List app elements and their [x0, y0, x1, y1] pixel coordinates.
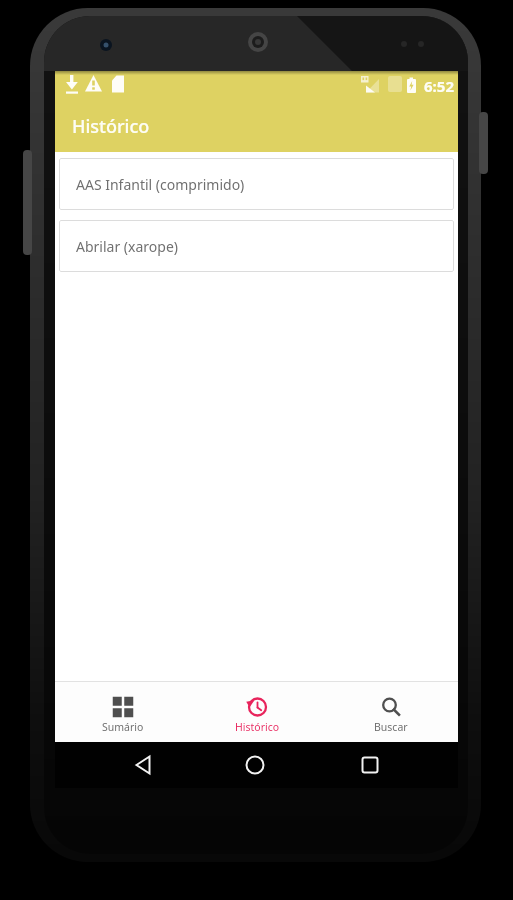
staticText: 6:52 — [424, 76, 454, 96]
button[interactable]: AAS Infantil (comprimido) — [59, 158, 454, 210]
button[interactable] — [324, 742, 458, 788]
staticText: Sumário — [102, 720, 144, 734]
button[interactable] — [55, 742, 190, 788]
staticText: Histórico — [235, 720, 280, 734]
button[interactable]: Abrilar (xarope) — [59, 220, 454, 272]
button[interactable]: Buscar — [324, 682, 458, 742]
staticText: AAS Infantil (comprimido) — [76, 175, 245, 194]
button[interactable] — [190, 742, 324, 788]
button[interactable]: Sumário — [55, 682, 190, 742]
button[interactable]: Histórico — [190, 682, 324, 742]
staticText: Buscar — [374, 720, 408, 734]
staticText: Histórico — [72, 114, 150, 139]
staticText: Abrilar (xarope) — [76, 237, 178, 256]
